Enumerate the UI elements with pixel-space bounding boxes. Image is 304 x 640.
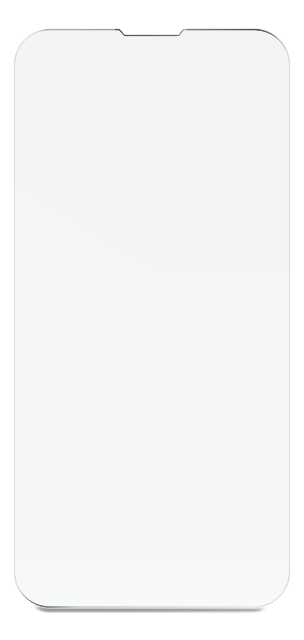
other: Phone screen protector xyxy=(0,0,304,640)
